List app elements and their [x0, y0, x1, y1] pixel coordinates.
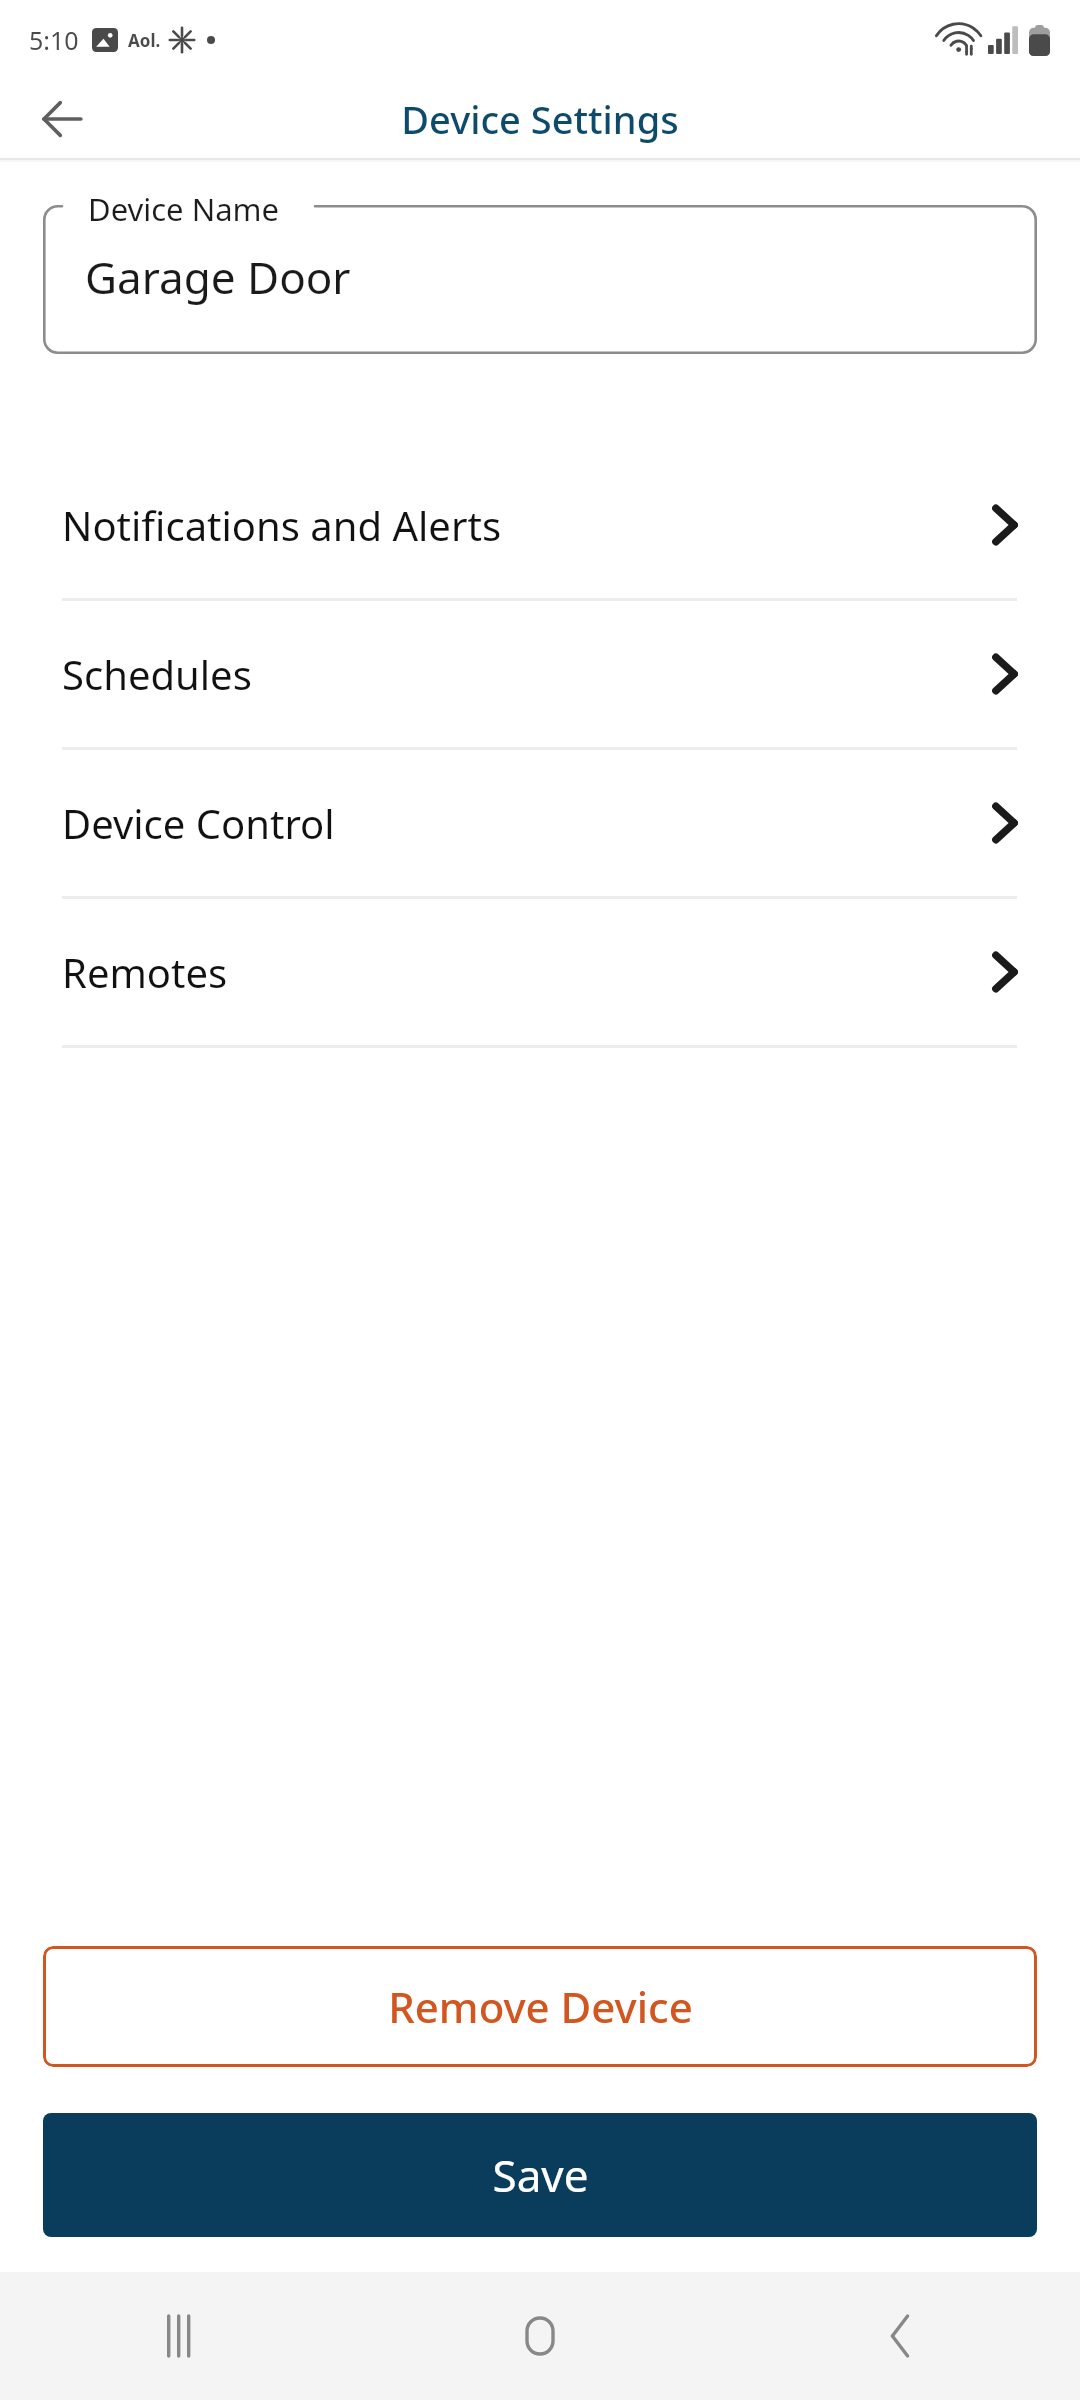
button[interactable]: Schedules: [0, 601, 1080, 750]
staticText: Device Settings: [401, 93, 679, 145]
button[interactable]: Notifications and Alerts: [0, 452, 1080, 601]
staticText: Remove Device: [388, 1978, 693, 2035]
staticText: 5:10: [29, 23, 79, 57]
staticText: Save: [492, 2145, 589, 2205]
button[interactable]: Device Control: [0, 750, 1080, 899]
button[interactable]: Remotes: [0, 899, 1080, 1048]
button[interactable]: Back: [34, 91, 90, 147]
staticText: Aol.: [128, 29, 161, 52]
staticText: Device Name: [88, 188, 280, 230]
staticText: Device Control: [62, 796, 335, 850]
staticText: Schedules: [62, 647, 252, 701]
button[interactable]: Remove Device: [43, 1946, 1037, 2067]
button[interactable]: Back: [850, 2286, 950, 2386]
button[interactable]: Save: [43, 2113, 1037, 2237]
staticText: Notifications and Alerts: [62, 498, 502, 552]
staticText: Remotes: [62, 945, 228, 999]
button[interactable]: Home: [490, 2286, 590, 2386]
staticText: Garage Door: [85, 247, 351, 307]
button[interactable]: Recent apps: [130, 2286, 230, 2386]
